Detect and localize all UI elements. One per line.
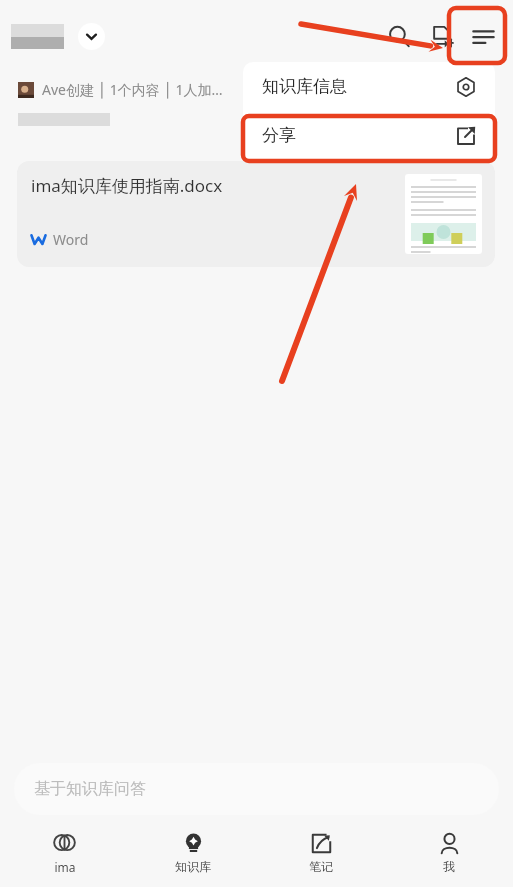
staticText: 知识库 — [175, 859, 211, 874]
staticText: 我 — [443, 859, 455, 874]
staticText: Word — [53, 230, 89, 249]
button[interactable]: 知识库 — [129, 832, 257, 874]
button[interactable]: More menu — [462, 15, 504, 57]
staticText: 分享 — [262, 125, 296, 146]
staticText: ima知识库使用指南.docx — [31, 174, 223, 197]
button[interactable]: 我 — [385, 832, 513, 874]
staticText: 笔记 — [309, 859, 333, 874]
button[interactable]: ima知识库使用指南.docx — [17, 161, 495, 267]
button[interactable]: Search — [378, 15, 420, 57]
staticText: Ave创建 │ 1个内容 │ 1人加… — [42, 80, 223, 99]
staticText: 基于知识库问答 — [34, 779, 146, 799]
staticText: ima — [54, 859, 76, 875]
button[interactable]: ima — [0, 832, 129, 875]
button[interactable]: Switch knowledge base — [78, 23, 105, 50]
button[interactable]: 基于知识库问答 — [14, 763, 499, 815]
staticText: 知识库信息 — [262, 76, 347, 97]
button[interactable]: 知识库信息 — [243, 62, 495, 111]
button[interactable]: Knowledge base title — [11, 24, 64, 49]
button[interactable]: 笔记 — [257, 832, 385, 874]
button[interactable]: Add document — [420, 15, 462, 57]
button[interactable]: 分享 — [243, 111, 495, 160]
